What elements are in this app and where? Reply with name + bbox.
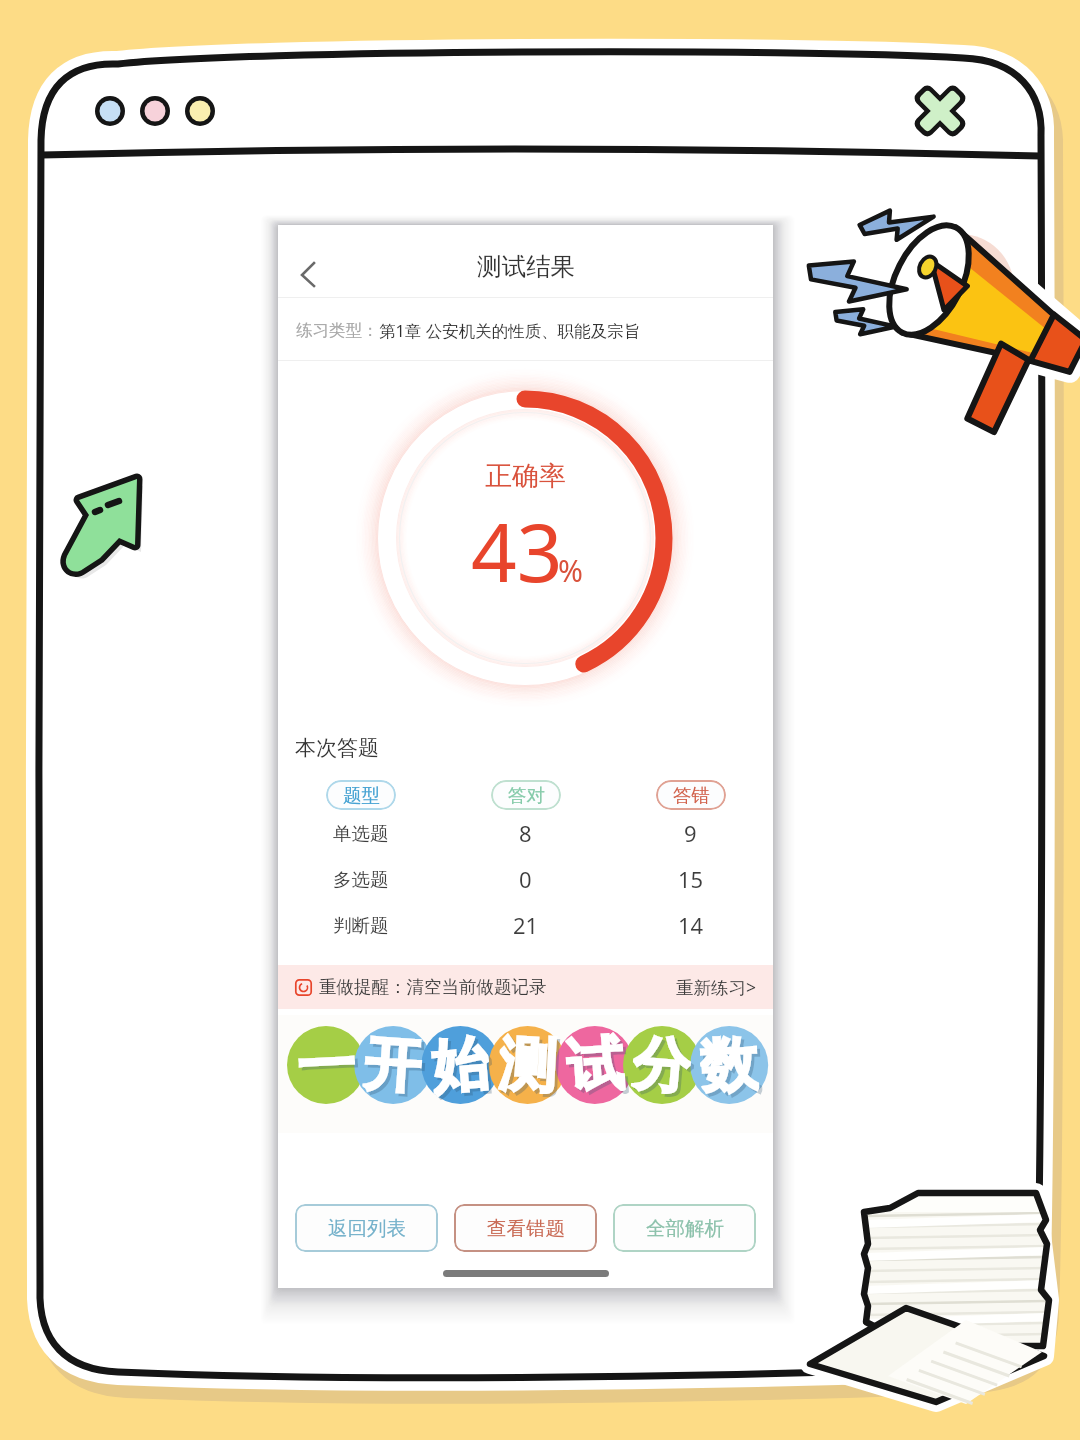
staticText: 测试结果: [477, 251, 575, 282]
staticText: 多选题: [333, 868, 389, 891]
staticText: 数: [698, 1027, 760, 1096]
staticText: 一: [295, 1027, 357, 1096]
staticText: 重做提醒：清空当前做题记录: [319, 976, 547, 998]
staticText: 分: [630, 1027, 694, 1097]
button[interactable]: 多选题: [278, 856, 773, 902]
staticText: 始: [431, 1030, 495, 1100]
staticText: 始: [428, 1027, 492, 1097]
staticText: 练习类型：: [296, 320, 379, 341]
button[interactable]: 单选题: [278, 810, 773, 856]
button[interactable]: 一开始测试分数: [278, 1015, 773, 1133]
staticText: 0: [519, 864, 532, 894]
staticText: 一: [298, 1030, 360, 1099]
staticText: 判断题: [333, 914, 389, 937]
button[interactable]: 查看错题: [454, 1204, 597, 1252]
staticText: 数: [701, 1030, 763, 1099]
button[interactable]: 判断题: [278, 902, 773, 948]
staticText: 单选题: [333, 822, 389, 845]
staticText: 开: [362, 1027, 424, 1097]
staticText: 查看错题: [487, 1216, 565, 1241]
staticText: 重新练习>: [676, 975, 757, 999]
staticText: 第1章 公安机关的性质、职能及宗旨: [379, 319, 641, 342]
button[interactable]: 全部解析: [613, 1204, 756, 1252]
staticText: 9: [684, 818, 697, 848]
staticText: 21: [513, 910, 539, 940]
button[interactable]: 重做提醒：清空当前做题记录: [278, 965, 773, 1009]
button[interactable]: 重新练习>: [676, 975, 757, 999]
button[interactable]: Close: [905, 76, 975, 146]
staticText: 测: [500, 1030, 562, 1099]
button[interactable]: 返回列表: [295, 1204, 438, 1252]
staticText: 测: [497, 1027, 559, 1096]
staticText: 答错: [673, 784, 710, 807]
staticText: %: [558, 550, 583, 591]
staticText: 试: [567, 1030, 629, 1100]
button[interactable]: 答对: [491, 780, 561, 810]
staticText: 分: [633, 1030, 697, 1100]
staticText: 14: [678, 910, 704, 940]
staticText: 43: [471, 496, 563, 605]
staticText: 8: [519, 818, 532, 848]
button[interactable]: Back: [286, 233, 342, 289]
staticText: 开: [365, 1030, 427, 1100]
staticText: 本次答题: [295, 735, 379, 761]
staticText: 正确率: [485, 459, 566, 493]
staticText: 返回列表: [328, 1216, 406, 1241]
button[interactable]: 答错: [656, 780, 726, 810]
button[interactable]: 题型: [326, 780, 396, 810]
staticText: 题型: [343, 784, 380, 807]
staticText: 试: [564, 1027, 626, 1097]
staticText: 全部解析: [646, 1216, 724, 1241]
staticText: 答对: [508, 784, 545, 807]
staticText: 15: [678, 864, 704, 894]
